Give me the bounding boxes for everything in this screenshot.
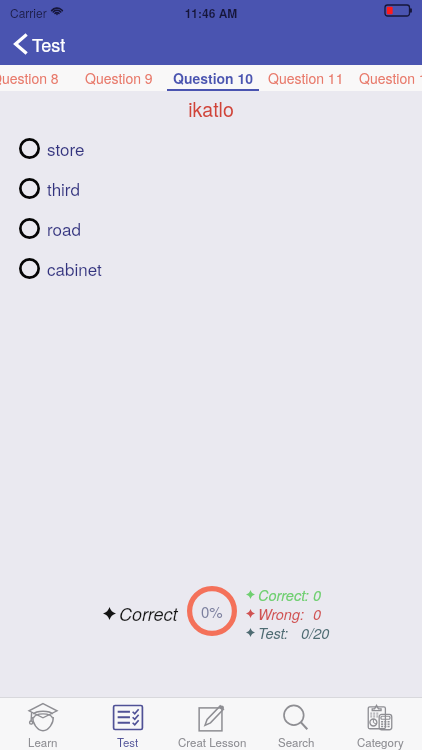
staticText: 0% (201, 601, 223, 622)
staticText: Question 12 (359, 68, 422, 88)
staticText: Category (357, 734, 404, 750)
staticText: ikatlo (0, 95, 422, 123)
staticText: road (47, 216, 81, 240)
staticText: third (47, 176, 80, 200)
staticText: Test (117, 734, 139, 750)
button[interactable]: road (0, 208, 422, 248)
staticText: Wrong: (258, 604, 305, 623)
button[interactable]: Question 10 (167, 65, 259, 91)
button[interactable]: Question 12 (354, 65, 422, 91)
staticText: Correct (119, 601, 178, 626)
staticText: 0/20 (289, 623, 330, 642)
staticText: Correct: (258, 585, 309, 604)
button[interactable]: Test (10, 28, 70, 60)
staticText: Question 8 (0, 68, 59, 88)
staticText: 0 (309, 585, 322, 604)
button[interactable]: store (0, 128, 422, 168)
button[interactable]: Search (254, 697, 338, 750)
staticText: Question 9 (85, 68, 153, 88)
staticText: Question 11 (268, 68, 344, 88)
button[interactable]: cabinet (0, 248, 422, 288)
staticText: 0 (305, 604, 322, 623)
button[interactable]: third (0, 168, 422, 208)
button[interactable]: Question 9 (76, 65, 162, 91)
staticText: 11:46 AM (0, 4, 422, 21)
button[interactable]: Test (85, 697, 170, 750)
button[interactable]: Question 8 (0, 65, 68, 91)
staticText: Test (32, 31, 66, 57)
button[interactable]: Question 11 (263, 65, 349, 91)
button[interactable]: Learn (0, 697, 85, 750)
staticText: store (47, 136, 85, 160)
staticText: Question 10 (173, 68, 254, 88)
button[interactable]: Creat Lesson (170, 697, 254, 750)
staticText: Search (278, 734, 315, 750)
staticText: Test: (258, 623, 289, 642)
staticText: Learn (28, 734, 58, 750)
staticText: Carrier (10, 4, 47, 21)
staticText: Creat Lesson (178, 734, 247, 750)
staticText: cabinet (47, 256, 102, 280)
button[interactable]: Category (338, 697, 422, 750)
